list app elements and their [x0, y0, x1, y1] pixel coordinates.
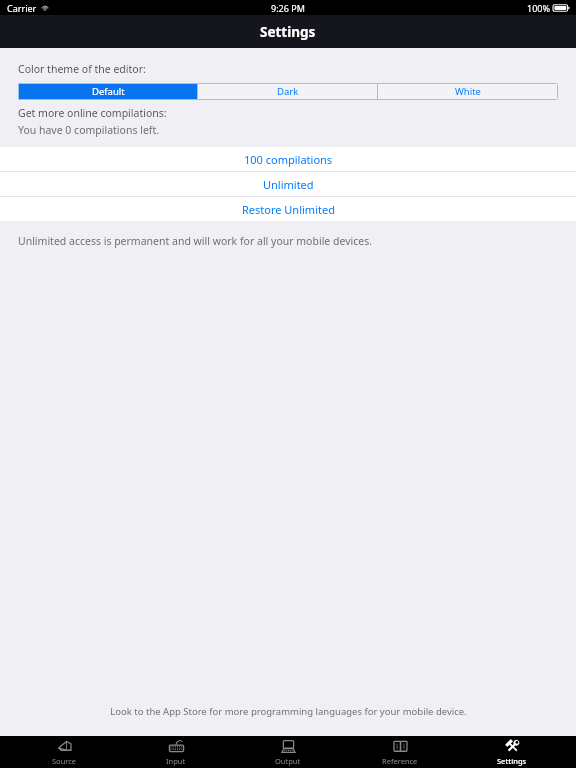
staticText: Source [52, 756, 77, 766]
staticText: Output [275, 756, 301, 766]
button[interactable]: Unlimited [0, 172, 576, 196]
staticText: Input [166, 756, 186, 766]
staticText: Look to the App Store for more programmi… [110, 705, 467, 718]
button[interactable]: Settings [464, 736, 560, 768]
staticText: You have 0 compilations left. [18, 123, 160, 137]
button[interactable]: Default [18, 83, 198, 100]
button[interactable]: White [378, 83, 558, 100]
staticText: Reference [382, 756, 418, 766]
staticText: Carrier [7, 2, 37, 14]
staticText: 9:26 PM [271, 2, 305, 14]
staticText: White [455, 85, 481, 98]
staticText: Color theme of the editor: [18, 62, 146, 76]
button[interactable]: Restore Unlimited [0, 197, 576, 221]
staticText: Dark [277, 85, 299, 98]
staticText: 100 compilations [244, 152, 333, 167]
staticText: Default [92, 85, 125, 98]
button[interactable]: Reference [352, 736, 448, 768]
staticText: Settings [260, 23, 316, 41]
button[interactable]: Output [240, 736, 336, 768]
staticText: Unlimited access is permanent and will w… [18, 234, 373, 248]
staticText: Get more online compilations: [18, 106, 167, 120]
button[interactable]: Input [128, 736, 224, 768]
button[interactable]: Dark [198, 83, 378, 100]
staticText: 100% [527, 2, 550, 14]
staticText: Settings [497, 756, 527, 766]
staticText: Unlimited [263, 177, 314, 192]
staticText: Restore Unlimited [242, 202, 335, 217]
button[interactable]: Source [16, 736, 112, 768]
button[interactable]: 100 compilations [0, 147, 576, 171]
